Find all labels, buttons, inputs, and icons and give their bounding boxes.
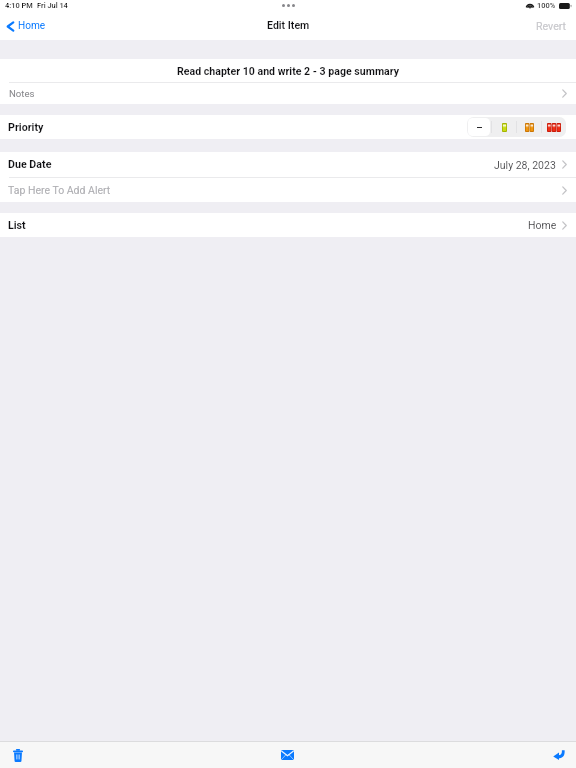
staticText: Home [18,20,46,32]
staticText: List [8,219,26,232]
button[interactable]: Home [0,20,52,32]
staticText: Revert [536,20,567,32]
staticText: Edit Item [267,19,310,31]
button[interactable] [542,117,566,137]
button[interactable] [468,118,490,136]
staticText: Read chapter 10 and write 2 - 3 page sum… [177,65,400,77]
staticText: 100% [537,1,556,10]
staticText: Fri Jul 14 [37,1,68,10]
staticText: Home [528,219,557,231]
button[interactable]: Delete [0,742,35,768]
button[interactable]: Mail [270,742,305,768]
button[interactable]: Tap Here To Add Alert [0,178,576,202]
staticText: Notes [9,88,35,99]
button[interactable] [492,117,516,137]
button[interactable] [517,117,541,137]
button[interactable]: List [0,213,576,237]
staticText: July 28, 2023 [494,159,556,171]
button[interactable]: Return [541,742,576,768]
button[interactable]: Notes [0,83,576,104]
staticText: Due Date [8,158,52,171]
button[interactable]: Due Date [0,152,576,177]
staticText: Priority [8,121,44,134]
staticText: Tap Here To Add Alert [8,184,111,196]
button[interactable]: Revert [527,20,576,32]
staticText: 4:10 PM [5,1,33,10]
